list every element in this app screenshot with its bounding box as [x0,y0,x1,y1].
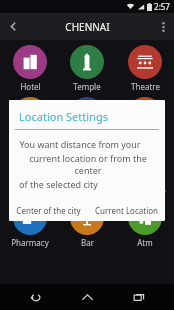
button[interactable]: Back [0,13,26,40]
staticText: School [18,185,43,196]
staticText: Mall [79,185,95,196]
staticText: Center of the city [16,205,81,216]
button[interactable]: Library [59,96,115,145]
staticText: Post Office [125,185,166,196]
staticText: Temple [73,81,101,92]
staticText: Hotel [20,81,41,92]
button[interactable]: Cafe [2,96,58,145]
staticText: Atm [137,237,153,248]
staticText: 2:57 [154,1,170,12]
staticText: Location Settings [19,109,108,124]
button[interactable]: School [2,148,58,197]
button[interactable]: Temple [59,44,115,93]
button[interactable]: Home [70,284,104,310]
staticText: Salon [135,133,156,144]
staticText: of the selected city [19,178,98,190]
button[interactable]: Bar [59,200,115,249]
staticText: current location or from the center [19,152,157,176]
staticText: Pharmacy [11,237,49,248]
button[interactable]: Atm [117,200,173,249]
button[interactable]: Recent apps [122,284,156,310]
staticText: CHENNAI [65,20,110,34]
button[interactable]: More options [152,13,174,40]
staticText: Library [74,133,101,144]
button[interactable]: Hotel [2,44,58,93]
button[interactable]: Theatre [117,44,173,93]
button[interactable]: Back [18,284,52,310]
staticText: Current Location [95,205,158,216]
button[interactable]: Mall [59,148,115,197]
button[interactable]: Salon [117,96,173,145]
staticText: Cafe [22,133,39,144]
button[interactable]: Center of the city [9,199,87,221]
staticText: You want distance from your [19,138,141,150]
button[interactable]: Current Location [87,199,165,221]
staticText: Bar [81,237,94,248]
staticText: Theatre [131,81,160,92]
button[interactable]: Pharmacy [2,200,58,249]
button[interactable]: Post Office [117,148,173,197]
